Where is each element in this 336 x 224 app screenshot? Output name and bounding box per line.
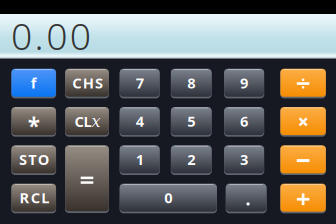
button[interactable]: RCL: [11, 184, 56, 212]
button[interactable]: f: [11, 69, 56, 97]
button[interactable]: Asterisk: [11, 108, 56, 136]
staticText: RCL: [20, 188, 49, 207]
button[interactable]: CHS: [65, 69, 109, 97]
button[interactable]: Divide: [280, 69, 326, 97]
button[interactable]: 2: [171, 146, 211, 174]
button[interactable]: Clear x: [65, 108, 109, 136]
staticText: 7: [136, 73, 144, 92]
staticText: CHS: [72, 73, 103, 92]
button[interactable]: Plus: [280, 184, 326, 212]
staticText: 2: [187, 150, 195, 169]
staticText: 4: [136, 111, 144, 131]
button[interactable]: 1: [120, 146, 159, 174]
staticText: CLx: [75, 111, 101, 131]
staticText: 0: [164, 188, 172, 207]
button[interactable]: 6: [224, 108, 264, 136]
button[interactable]: Minus: [280, 146, 326, 174]
staticText: 8: [187, 73, 195, 92]
staticText: 9: [240, 73, 248, 92]
button[interactable]: Multiply: [280, 108, 326, 136]
button[interactable]: 0: [120, 184, 217, 212]
staticText: 5: [187, 111, 195, 131]
button[interactable]: 7: [120, 69, 159, 97]
button[interactable]: 4: [120, 108, 159, 136]
button[interactable]: 5: [171, 108, 211, 136]
staticText: 0.00: [11, 11, 91, 60]
button[interactable]: Decimal point: [226, 184, 266, 212]
staticText: f: [31, 73, 37, 92]
button[interactable]: 3: [224, 146, 264, 174]
button[interactable]: 8: [171, 69, 211, 97]
staticText: *: [28, 111, 40, 141]
button[interactable]: 9: [224, 69, 264, 97]
staticText: 3: [240, 150, 248, 169]
button[interactable]: STO: [11, 146, 56, 174]
button[interactable]: Equals: [65, 146, 109, 212]
staticText: 6: [240, 111, 248, 131]
staticText: STO: [19, 150, 50, 169]
staticText: 1: [136, 150, 144, 169]
